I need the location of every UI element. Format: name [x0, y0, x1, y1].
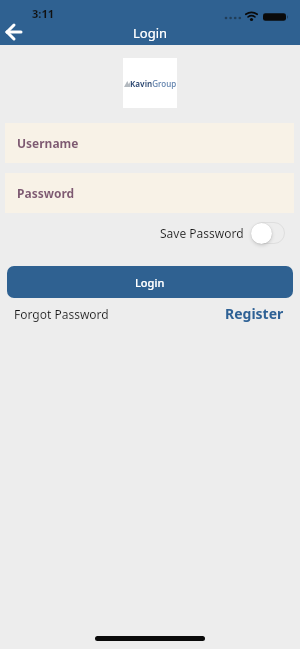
staticText: Register	[225, 304, 284, 323]
staticText: 3:11	[32, 6, 54, 21]
staticText: Login	[133, 24, 168, 42]
staticText: Save Password	[160, 225, 244, 241]
staticText: KavinGroup	[130, 78, 177, 89]
staticText: Forgot Password	[14, 306, 109, 322]
staticText: Username	[17, 135, 79, 151]
staticText: Login	[135, 275, 165, 290]
staticText: Password	[17, 185, 75, 201]
